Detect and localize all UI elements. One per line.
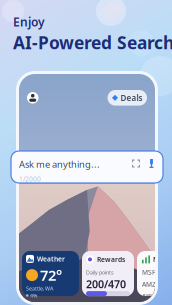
button[interactable]: Ask me anything... [11, 151, 163, 183]
button[interactable]: M [137, 251, 172, 296]
staticText: 4% [30, 292, 37, 299]
staticText: MSFT [142, 268, 159, 277]
staticText: AI-Powered Search [13, 31, 172, 54]
staticText: 1/2000 [19, 174, 41, 183]
staticText: Ask me anything... [19, 158, 100, 170]
staticText: 200/470 [86, 277, 126, 291]
staticText: APPL [142, 292, 157, 300]
staticText: Enjoy [13, 14, 45, 30]
staticText: AMZN [142, 280, 161, 289]
button[interactable]: Deals [107, 90, 147, 106]
button[interactable]: Profile [27, 92, 38, 104]
staticText: OR [142, 303, 151, 305]
button[interactable]: Rewards [82, 251, 134, 296]
staticText: 72° [40, 265, 62, 285]
staticText: Weather [37, 254, 65, 263]
staticText: Deals [120, 92, 142, 103]
staticText: Daily points [86, 269, 114, 276]
staticText: Seattle, WA [26, 285, 53, 292]
button[interactable]: Weather [22, 251, 79, 296]
staticText: M [153, 255, 159, 264]
staticText: Rewards [97, 255, 125, 264]
